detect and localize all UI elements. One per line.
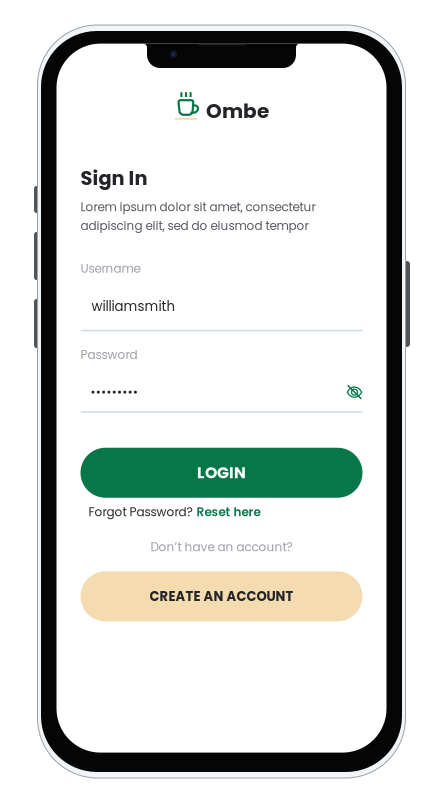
- button[interactable]: Reset here: [196, 504, 260, 520]
- button[interactable]: LOGIN: [80, 448, 362, 498]
- staticText: Lorem ipsum dolor sit amet, consectetur: [80, 199, 315, 215]
- button[interactable]: CREATE AN ACCOUNT: [80, 571, 362, 621]
- button[interactable]: Show password: [346, 384, 362, 400]
- staticText: CREATE AN ACCOUNT: [149, 587, 293, 605]
- staticText: Reset here: [196, 504, 260, 520]
- staticText: Password: [80, 346, 137, 363]
- staticText: Username: [80, 260, 140, 277]
- staticText: williamsmith: [91, 297, 175, 316]
- staticText: Forgot Password?: [88, 504, 192, 520]
- staticText: Ombe: [206, 97, 269, 125]
- staticText: Don’t have an account?: [150, 538, 292, 555]
- staticText: Sign In: [80, 165, 147, 192]
- staticText: adipiscing elit, sed do eiusmod tempor: [80, 217, 308, 234]
- staticText: LOGIN: [197, 462, 246, 484]
